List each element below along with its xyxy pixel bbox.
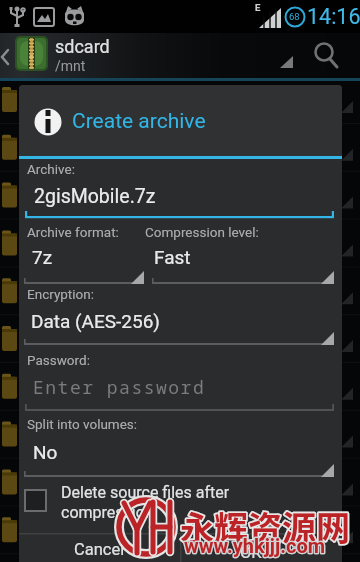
staticText: E xyxy=(255,2,261,13)
staticText: Compression level: xyxy=(145,224,259,240)
button[interactable] xyxy=(300,36,348,76)
staticText: Create archive xyxy=(72,109,206,134)
staticText: Split into volumes: xyxy=(27,416,138,432)
staticText: 7z xyxy=(32,246,53,268)
staticText: /mnt xyxy=(55,58,86,74)
staticText: Encryption: xyxy=(27,286,94,302)
staticText: 永辉资源网 xyxy=(180,502,350,551)
button[interactable] xyxy=(24,180,334,220)
button[interactable] xyxy=(24,365,334,413)
staticText: 2gisMobile.7z xyxy=(34,185,156,208)
button[interactable] xyxy=(24,427,334,477)
staticText: Fast xyxy=(154,246,191,268)
staticText: 68 xyxy=(289,11,300,22)
staticText: 永辉资源网 xyxy=(180,502,350,551)
staticText: 14:16 xyxy=(307,4,360,29)
button[interactable] xyxy=(181,535,342,562)
button[interactable] xyxy=(19,535,180,562)
staticText: OK xyxy=(240,543,262,562)
staticText: Archive format: xyxy=(27,224,119,240)
button[interactable] xyxy=(0,33,360,78)
staticText: Enter password xyxy=(33,375,206,400)
staticText: Delete source files after compression xyxy=(61,483,230,522)
staticText: Archive: xyxy=(27,161,75,177)
staticText: No xyxy=(33,441,58,463)
staticText: Data (AES-256) xyxy=(31,310,160,332)
button[interactable] xyxy=(24,483,334,527)
staticText: www.yhkjjj.com xyxy=(184,534,326,557)
staticText: Password: xyxy=(27,352,90,368)
staticText: www.yhkjjj.com xyxy=(184,534,326,557)
button[interactable] xyxy=(24,295,334,345)
button[interactable] xyxy=(152,235,334,285)
button[interactable] xyxy=(24,235,144,285)
staticText: Cancel xyxy=(74,540,125,559)
staticText: sdcard xyxy=(55,36,110,57)
